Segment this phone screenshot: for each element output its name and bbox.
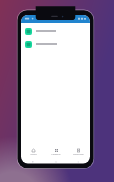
button[interactable]: [21, 26, 90, 36]
button[interactable]: Category: [45, 148, 67, 156]
button[interactable]: Bookmark: [67, 148, 89, 156]
button[interactable]: [21, 39, 90, 49]
button[interactable]: Home: [22, 148, 44, 156]
staticText: Bookmark: [73, 153, 84, 156]
staticText: Home: [30, 153, 37, 156]
staticText: Category: [51, 153, 61, 156]
